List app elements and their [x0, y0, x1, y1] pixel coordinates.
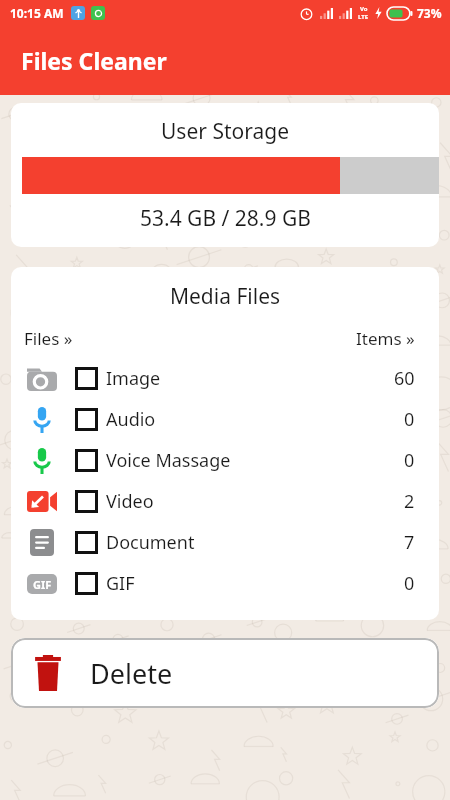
button[interactable]: Select Video [75, 490, 98, 513]
button[interactable]: Select Audio [75, 408, 98, 431]
button[interactable]: Select Voice Massage [11, 440, 439, 481]
staticText: GIF [33, 577, 52, 592]
staticText: Files Cleaner [21, 45, 167, 76]
button[interactable]: Select Document [11, 522, 439, 563]
button[interactable]: Select Image [75, 367, 98, 390]
button[interactable]: Select Document [75, 531, 98, 554]
staticText: Files » [24, 327, 73, 350]
staticText: 10:15 AM [10, 5, 64, 21]
staticText: 60 [394, 366, 415, 391]
staticText: GIF [106, 571, 135, 596]
button[interactable]: Select Audio [11, 399, 439, 440]
staticText: Media Files [11, 282, 439, 311]
staticText: User Storage [161, 117, 289, 146]
staticText: Image [106, 366, 161, 391]
staticText: LTE [358, 13, 369, 21]
button[interactable]: Select GIF [75, 572, 98, 595]
staticText: Document [106, 530, 195, 555]
button[interactable]: Delete [11, 638, 439, 708]
staticText: Audio [106, 407, 156, 432]
staticText: Vo [360, 5, 368, 13]
staticText: Voice Massage [106, 448, 231, 473]
staticText: Video [106, 489, 154, 514]
staticText: Delete [90, 655, 173, 692]
button[interactable]: Select Image [11, 358, 439, 399]
staticText: 53.4 GB / 28.9 GB [140, 204, 311, 233]
button[interactable]: GIF [11, 563, 439, 604]
staticText: Items » [356, 327, 415, 350]
staticText: 0 [404, 448, 415, 473]
button[interactable]: Select Voice Massage [75, 449, 98, 472]
staticText: 7 [404, 530, 415, 555]
staticText: 0 [404, 571, 415, 596]
staticText: 2 [404, 489, 415, 514]
button[interactable]: Select Video [11, 481, 439, 522]
staticText: 73% [417, 5, 442, 21]
staticText: 0 [404, 407, 415, 432]
